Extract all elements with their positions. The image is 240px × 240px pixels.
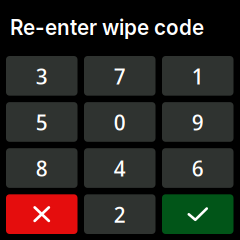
staticText: 6 [192,153,204,183]
staticText: 8 [36,153,48,183]
staticText: 1 [192,61,204,91]
button[interactable]: Cancel [6,194,77,234]
staticText: 7 [114,61,126,91]
staticText: Re-enter wipe code [10,15,204,40]
staticText: 9 [192,107,204,137]
button[interactable]: 4 [84,148,155,188]
staticText: 4 [114,153,126,183]
button[interactable]: 5 [6,102,77,142]
button[interactable]: 0 [84,102,155,142]
staticText: 3 [36,61,48,91]
staticText: 2 [114,199,126,229]
button[interactable]: 6 [162,148,233,188]
button[interactable]: 2 [84,194,155,234]
staticText: 0 [114,107,126,137]
button[interactable]: 1 [162,56,233,96]
button[interactable]: 8 [6,148,77,188]
button[interactable]: 7 [84,56,155,96]
staticText: 5 [36,107,48,137]
button[interactable]: 3 [6,56,77,96]
button[interactable]: 9 [162,102,233,142]
button[interactable]: Confirm [162,194,233,234]
